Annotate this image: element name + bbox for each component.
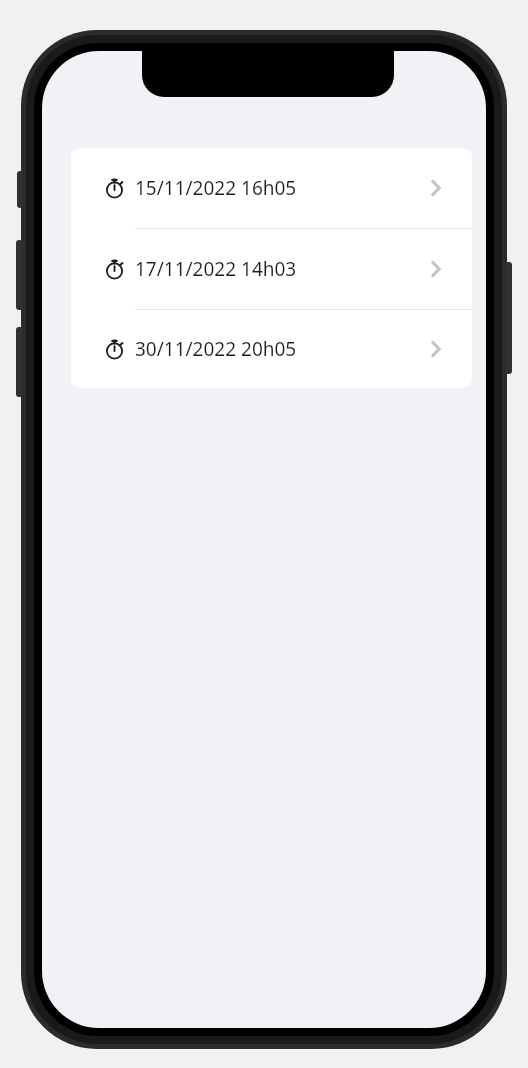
button[interactable]: 15/11/2022 16h05	[71, 148, 472, 228]
button[interactable]: 17/11/2022 14h03	[71, 229, 472, 309]
other: Open details	[429, 338, 443, 360]
staticText: 15/11/2022 16h05	[135, 175, 297, 201]
other: Open details	[429, 258, 443, 280]
staticText: 17/11/2022 14h03	[135, 256, 297, 282]
staticText: 30/11/2022 20h05	[135, 336, 297, 362]
other: Open details	[429, 177, 443, 199]
button[interactable]: 30/11/2022 20h05	[71, 310, 472, 388]
